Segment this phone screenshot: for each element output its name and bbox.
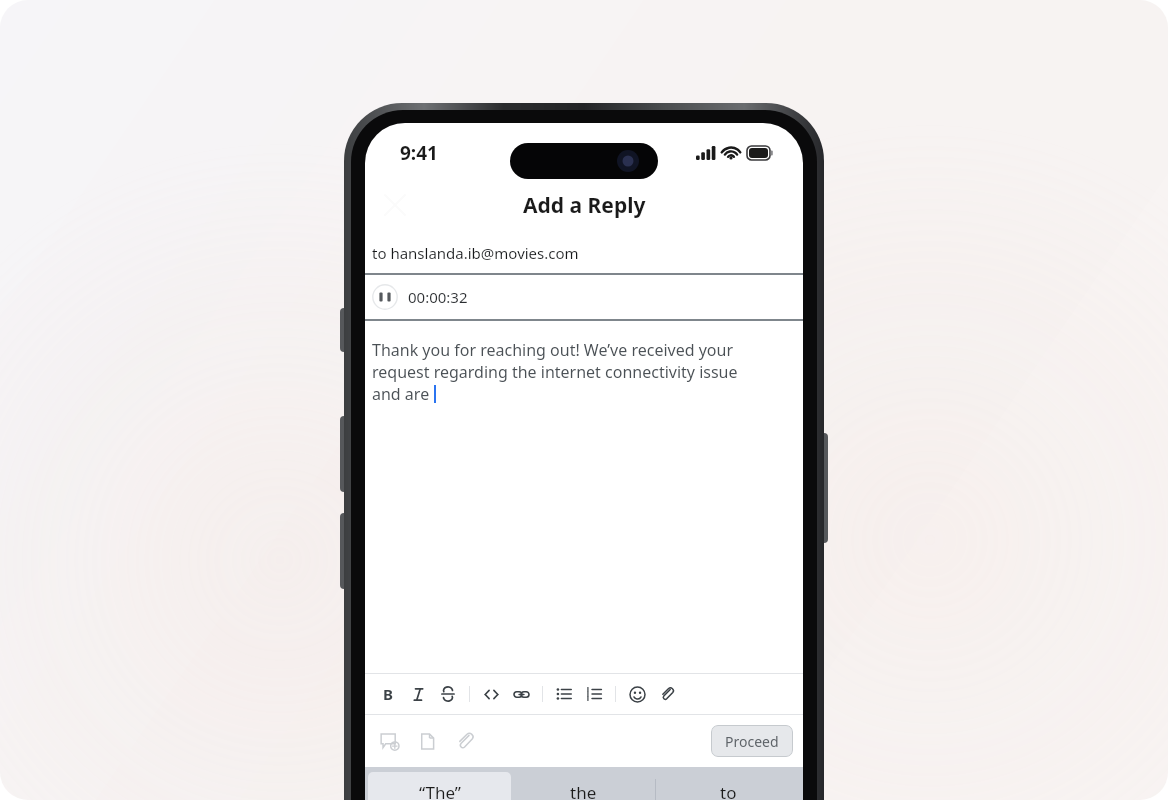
- button[interactable]: “The”: [368, 772, 511, 800]
- staticText: to hanslanda.ib@movies.com: [372, 243, 579, 263]
- button[interactable]: Pause: [372, 284, 398, 310]
- staticText: to: [720, 781, 737, 800]
- staticText: Proceed: [725, 732, 779, 751]
- button[interactable]: Attach: [652, 679, 682, 709]
- button[interactable]: Strikethrough: [433, 679, 463, 709]
- button[interactable]: Add comment: [373, 725, 405, 757]
- button[interactable]: Emoji: [622, 679, 652, 709]
- button[interactable]: Bulleted list: [549, 679, 579, 709]
- button[interactable]: Numbered list: [579, 679, 609, 709]
- staticText: “The”: [419, 781, 461, 800]
- staticText: 00:00:32: [408, 287, 468, 307]
- staticText: request regarding the internet connectiv…: [372, 361, 738, 383]
- button[interactable]: Insert document: [411, 725, 443, 757]
- button[interactable]: Proceed: [711, 725, 793, 757]
- button[interactable]: Link: [506, 679, 536, 709]
- button[interactable]: Bold: [373, 679, 403, 709]
- staticText: Thank you for reaching out! We’ve receiv…: [372, 339, 734, 361]
- staticText: the: [570, 781, 597, 800]
- button[interactable]: Code: [476, 679, 506, 709]
- button[interactable]: to: [656, 767, 800, 800]
- staticText: 9:41: [400, 140, 438, 166]
- button[interactable]: the: [511, 767, 655, 800]
- button[interactable]: Attach file: [449, 725, 481, 757]
- staticText: Add a Reply: [523, 191, 646, 220]
- button[interactable]: to hanslanda.ib@movies.com: [365, 233, 803, 273]
- staticText: and are: [372, 383, 430, 405]
- staticText: B: [383, 684, 393, 704]
- button[interactable]: Italic: [403, 679, 433, 709]
